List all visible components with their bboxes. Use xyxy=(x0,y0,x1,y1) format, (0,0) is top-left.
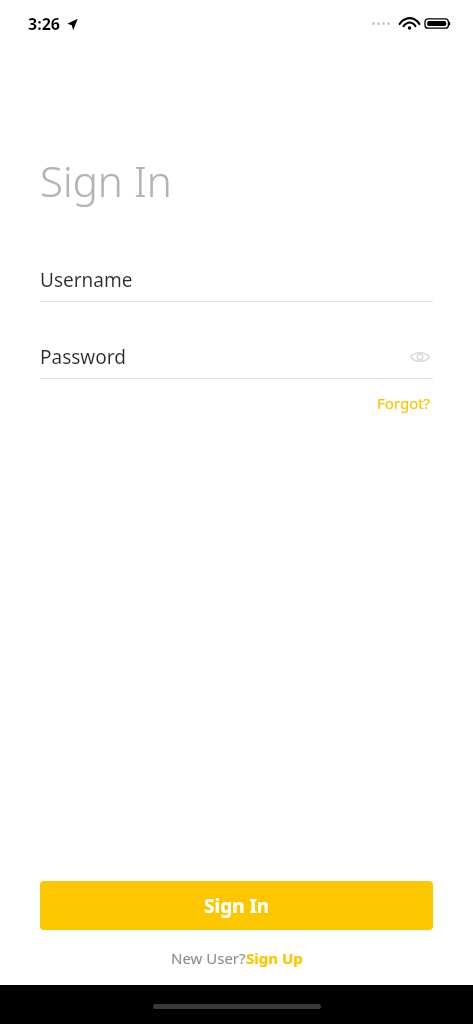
staticText: Forgot? xyxy=(377,393,431,413)
staticText: New User? xyxy=(171,948,246,968)
staticText: Sign Up xyxy=(246,948,303,968)
button[interactable]: Forgot? xyxy=(375,389,433,417)
button[interactable]: Sign Up xyxy=(246,948,303,968)
staticText: Sign In xyxy=(204,893,270,919)
staticText: Sign In xyxy=(40,152,172,209)
staticText: Username xyxy=(40,267,133,293)
button[interactable]: Show password xyxy=(407,344,433,370)
staticText: 3:26 xyxy=(28,13,60,35)
staticText: Password xyxy=(40,344,126,370)
button[interactable]: Sign In xyxy=(40,881,433,930)
